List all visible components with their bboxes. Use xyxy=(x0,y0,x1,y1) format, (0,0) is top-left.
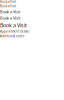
staticText: Book a Visit xyxy=(0,9,20,14)
staticText: Book a Visit xyxy=(0,4,16,8)
staticText: Appointment Details xyxy=(0,30,29,33)
staticText: Book a Visit xyxy=(0,15,20,21)
staticText: Book a Visit xyxy=(0,22,27,29)
staticText: Book a Visit xyxy=(0,0,16,3)
staticText: Additional notes xyxy=(0,34,24,38)
